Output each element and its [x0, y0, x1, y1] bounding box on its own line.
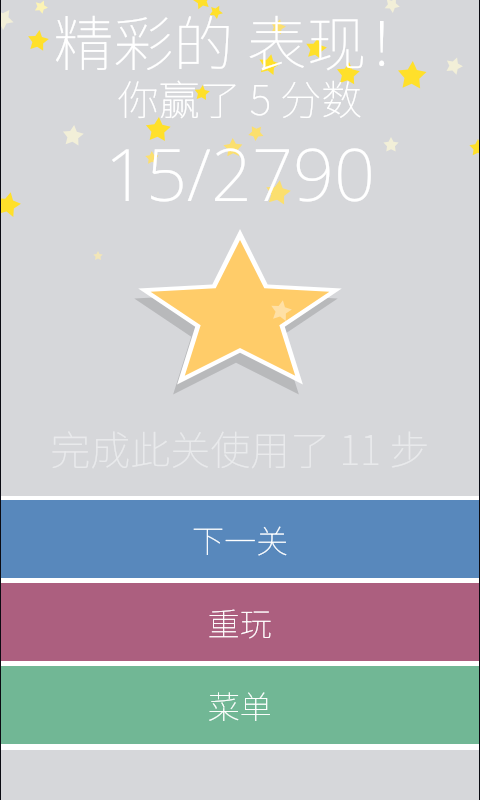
staticText: 下一关 — [192, 516, 289, 562]
button[interactable]: 重玩 — [0, 583, 480, 661]
staticText: 完成此关使用了 11 步 — [0, 419, 480, 477]
button[interactable]: 下一关 — [0, 500, 480, 578]
button[interactable]: 菜单 — [0, 666, 480, 744]
staticText: 重玩 — [208, 599, 273, 645]
staticText: 精彩的 表现！ — [0, 0, 480, 83]
staticText: 15/2790 — [0, 124, 480, 222]
staticText: 菜单 — [208, 682, 273, 728]
staticText: 你赢了 5 分数 — [0, 67, 480, 126]
